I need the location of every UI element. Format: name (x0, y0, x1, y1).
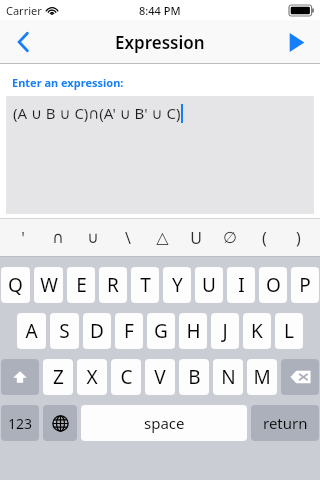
staticText: J (222, 318, 228, 344)
button[interactable]: A (17, 313, 46, 349)
button[interactable]: Shift (1, 359, 39, 395)
button[interactable]: △ (145, 218, 179, 257)
staticText: G (154, 318, 168, 344)
staticText: E (76, 272, 87, 298)
button[interactable]: I (227, 267, 255, 303)
staticText: ( (262, 227, 267, 249)
staticText: Y (172, 272, 183, 298)
button[interactable]: H (179, 313, 207, 349)
staticText: O (266, 272, 281, 298)
staticText: Enter an expression: (12, 75, 124, 90)
button[interactable]: 123 (1, 405, 39, 441)
staticText: ∪ (87, 228, 99, 247)
button[interactable]: C (111, 359, 141, 395)
button[interactable]: D (83, 313, 111, 349)
button[interactable]: return (251, 405, 319, 441)
button[interactable]: ∩ (40, 218, 75, 257)
staticText: (A ∪ B ∪ C)∩(A' ∪ B' ∪ C) (13, 103, 181, 123)
staticText: U (202, 272, 216, 298)
staticText: B (188, 364, 201, 390)
button[interactable]: M (247, 359, 277, 395)
staticText: I (238, 272, 245, 298)
staticText: U (190, 227, 202, 249)
button[interactable]: \ (110, 218, 145, 257)
staticText: D (90, 318, 104, 344)
staticText: Z (53, 364, 64, 390)
button[interactable]: T (131, 267, 159, 303)
button[interactable]: Q (1, 267, 30, 303)
button[interactable]: S (50, 313, 79, 349)
button[interactable]: ' (5, 218, 40, 257)
button[interactable]: space (81, 405, 247, 441)
staticText: M (253, 364, 271, 390)
staticText: R (107, 272, 119, 298)
staticText: △ (156, 228, 169, 247)
staticText: Expression (115, 31, 205, 54)
staticText: C (120, 364, 133, 390)
button[interactable]: Y (163, 267, 191, 303)
button[interactable]: U (195, 267, 223, 303)
staticText: ) (296, 227, 301, 249)
staticText: \ (125, 227, 131, 249)
button[interactable]: F (115, 313, 143, 349)
staticText: F (124, 318, 134, 344)
staticText: W (40, 272, 58, 298)
staticText: ∅ (223, 228, 237, 247)
button[interactable]: ∅ (213, 218, 247, 257)
button[interactable]: G (147, 313, 175, 349)
staticText: S (59, 318, 70, 344)
staticText: H (186, 318, 201, 344)
staticText: space (144, 413, 185, 433)
staticText: L (284, 318, 294, 344)
button[interactable]: U (179, 218, 213, 257)
button[interactable]: Z (43, 359, 73, 395)
button[interactable]: E (67, 267, 95, 303)
button[interactable]: P (291, 267, 319, 303)
staticText: V (154, 364, 166, 390)
staticText: ∩ (52, 228, 64, 247)
button[interactable]: K (243, 313, 271, 349)
button[interactable]: Change keyboard (43, 405, 77, 441)
button[interactable]: W (34, 267, 63, 303)
button[interactable]: Back (0, 20, 46, 64)
button[interactable]: (A ∪ B ∪ C)∩(A' ∪ B' ∪ C) (6, 96, 314, 214)
button[interactable]: J (211, 313, 239, 349)
staticText: P (299, 272, 311, 298)
button[interactable]: ) (281, 218, 315, 257)
staticText: T (140, 272, 151, 298)
staticText: 8:44 PM (139, 3, 181, 18)
button[interactable]: ( (247, 218, 281, 257)
button[interactable]: Backspace (281, 359, 319, 395)
staticText: Carrier (6, 3, 42, 18)
staticText: Q (8, 272, 23, 298)
button[interactable]: R (99, 267, 127, 303)
button[interactable]: ∪ (75, 218, 110, 257)
staticText: N (221, 364, 236, 390)
staticText: 123 (8, 414, 33, 433)
staticText: A (25, 318, 38, 344)
button[interactable]: B (179, 359, 209, 395)
staticText: K (251, 318, 263, 344)
button[interactable]: Evaluate (272, 20, 320, 64)
button[interactable]: O (259, 267, 287, 303)
button[interactable]: X (77, 359, 107, 395)
staticText: return (263, 413, 308, 433)
button[interactable]: N (213, 359, 243, 395)
staticText: ' (21, 227, 25, 249)
staticText: X (86, 364, 98, 390)
button[interactable]: V (145, 359, 175, 395)
button[interactable]: L (275, 313, 303, 349)
